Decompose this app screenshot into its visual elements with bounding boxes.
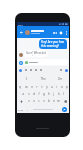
- button[interactable]: Tool 3: [34, 68, 38, 72]
- staticText: s: [28, 92, 30, 96]
- button[interactable]: p: [64, 83, 69, 90]
- staticText: j: [53, 92, 54, 96]
- button[interactable]: g: [41, 90, 46, 97]
- button[interactable]: Sure! What did you have in mind tonight: [24, 50, 48, 57]
- button[interactable]: Shift: [17, 97, 26, 105]
- staticText: f: [38, 92, 40, 96]
- button[interactable]: t: [39, 83, 44, 90]
- button[interactable]: e: [29, 83, 34, 90]
- staticText: e: [31, 85, 33, 89]
- button[interactable]: ?123: [17, 105, 25, 113]
- button[interactable]: n: [51, 97, 56, 105]
- button[interactable]: d: [31, 90, 36, 97]
- staticText: p: [66, 85, 68, 89]
- button[interactable]: i: [54, 83, 59, 90]
- button[interactable]: o: [59, 83, 64, 90]
- staticText: w: [25, 85, 28, 89]
- button[interactable]: I'm: [52, 74, 69, 83]
- staticText: u: [51, 85, 53, 89]
- button[interactable]: Space: [30, 105, 55, 113]
- staticText: m: [57, 99, 60, 103]
- button[interactable]: l: [61, 90, 66, 97]
- button[interactable]: v: [41, 97, 46, 105]
- button[interactable]: r: [34, 83, 39, 90]
- button[interactable]: Backspace: [61, 97, 69, 105]
- staticText: o: [61, 85, 63, 89]
- staticText: 9:41: [18, 23, 23, 26]
- button[interactable]: m: [56, 97, 61, 105]
- button[interactable]: s: [26, 90, 31, 97]
- button[interactable]: Video call: [52, 28, 58, 37]
- button[interactable]: f: [36, 90, 41, 97]
- staticText: a: [22, 92, 24, 96]
- staticText: i: [56, 85, 57, 89]
- button[interactable]: The: [35, 74, 52, 83]
- staticText: v: [43, 99, 45, 103]
- staticText: b: [48, 99, 50, 103]
- staticText: I'm: [58, 77, 63, 81]
- button[interactable]: c: [36, 97, 41, 105]
- button[interactable]: j: [51, 90, 56, 97]
- button[interactable]: Send: [62, 107, 67, 112]
- button[interactable]: Tool 2: [29, 68, 33, 72]
- staticText: .: [57, 107, 58, 111]
- button[interactable]: Back: [18, 28, 24, 37]
- button[interactable]: [24, 59, 68, 65]
- staticText: t: [41, 85, 43, 89]
- button[interactable]: Tool 1: [24, 68, 28, 72]
- staticText: z: [28, 99, 30, 103]
- staticText: h: [48, 92, 50, 96]
- button[interactable]: u: [49, 83, 54, 90]
- button[interactable]: y: [44, 83, 49, 90]
- button[interactable]: I: [17, 74, 35, 83]
- staticText: ,: [27, 107, 28, 111]
- staticText: q: [19, 85, 21, 89]
- button[interactable]: Google: [18, 68, 22, 72]
- button[interactable]: More options: [64, 28, 68, 37]
- button[interactable]: w: [23, 83, 29, 90]
- staticText: r: [36, 85, 38, 89]
- staticText: d: [33, 92, 35, 96]
- staticText: ?123: [18, 108, 24, 111]
- button[interactable]: x: [31, 97, 36, 105]
- button[interactable]: q: [17, 83, 23, 90]
- staticText: I: [26, 77, 27, 81]
- staticText: x: [33, 99, 35, 103]
- staticText: c: [38, 99, 40, 103]
- button[interactable]: Comma: [25, 105, 30, 113]
- button[interactable]: b: [46, 97, 51, 105]
- button[interactable]: a: [20, 90, 26, 97]
- button[interactable]: z: [26, 97, 31, 105]
- staticText: n: [53, 99, 55, 103]
- staticText: k: [58, 92, 60, 96]
- staticText: g: [43, 92, 45, 96]
- staticText: l: [63, 92, 64, 96]
- button[interactable]: Call: [58, 28, 64, 37]
- button[interactable]: Tool 4: [39, 68, 43, 72]
- button[interactable]: h: [46, 90, 51, 97]
- button[interactable]: Voice input: [64, 68, 68, 72]
- button[interactable]: Settings: [59, 68, 63, 72]
- staticText: The: [41, 77, 46, 81]
- button[interactable]: Add attachment: [18, 60, 23, 65]
- button[interactable]: k: [56, 90, 61, 97]
- staticText: y: [46, 85, 48, 89]
- staticText: Hey! Are you free this evening?: [41, 40, 65, 48]
- staticText: Sure! What did you have in mind tonight: [26, 51, 46, 56]
- button[interactable]: Hey! Are you free this evening?: [39, 39, 67, 49]
